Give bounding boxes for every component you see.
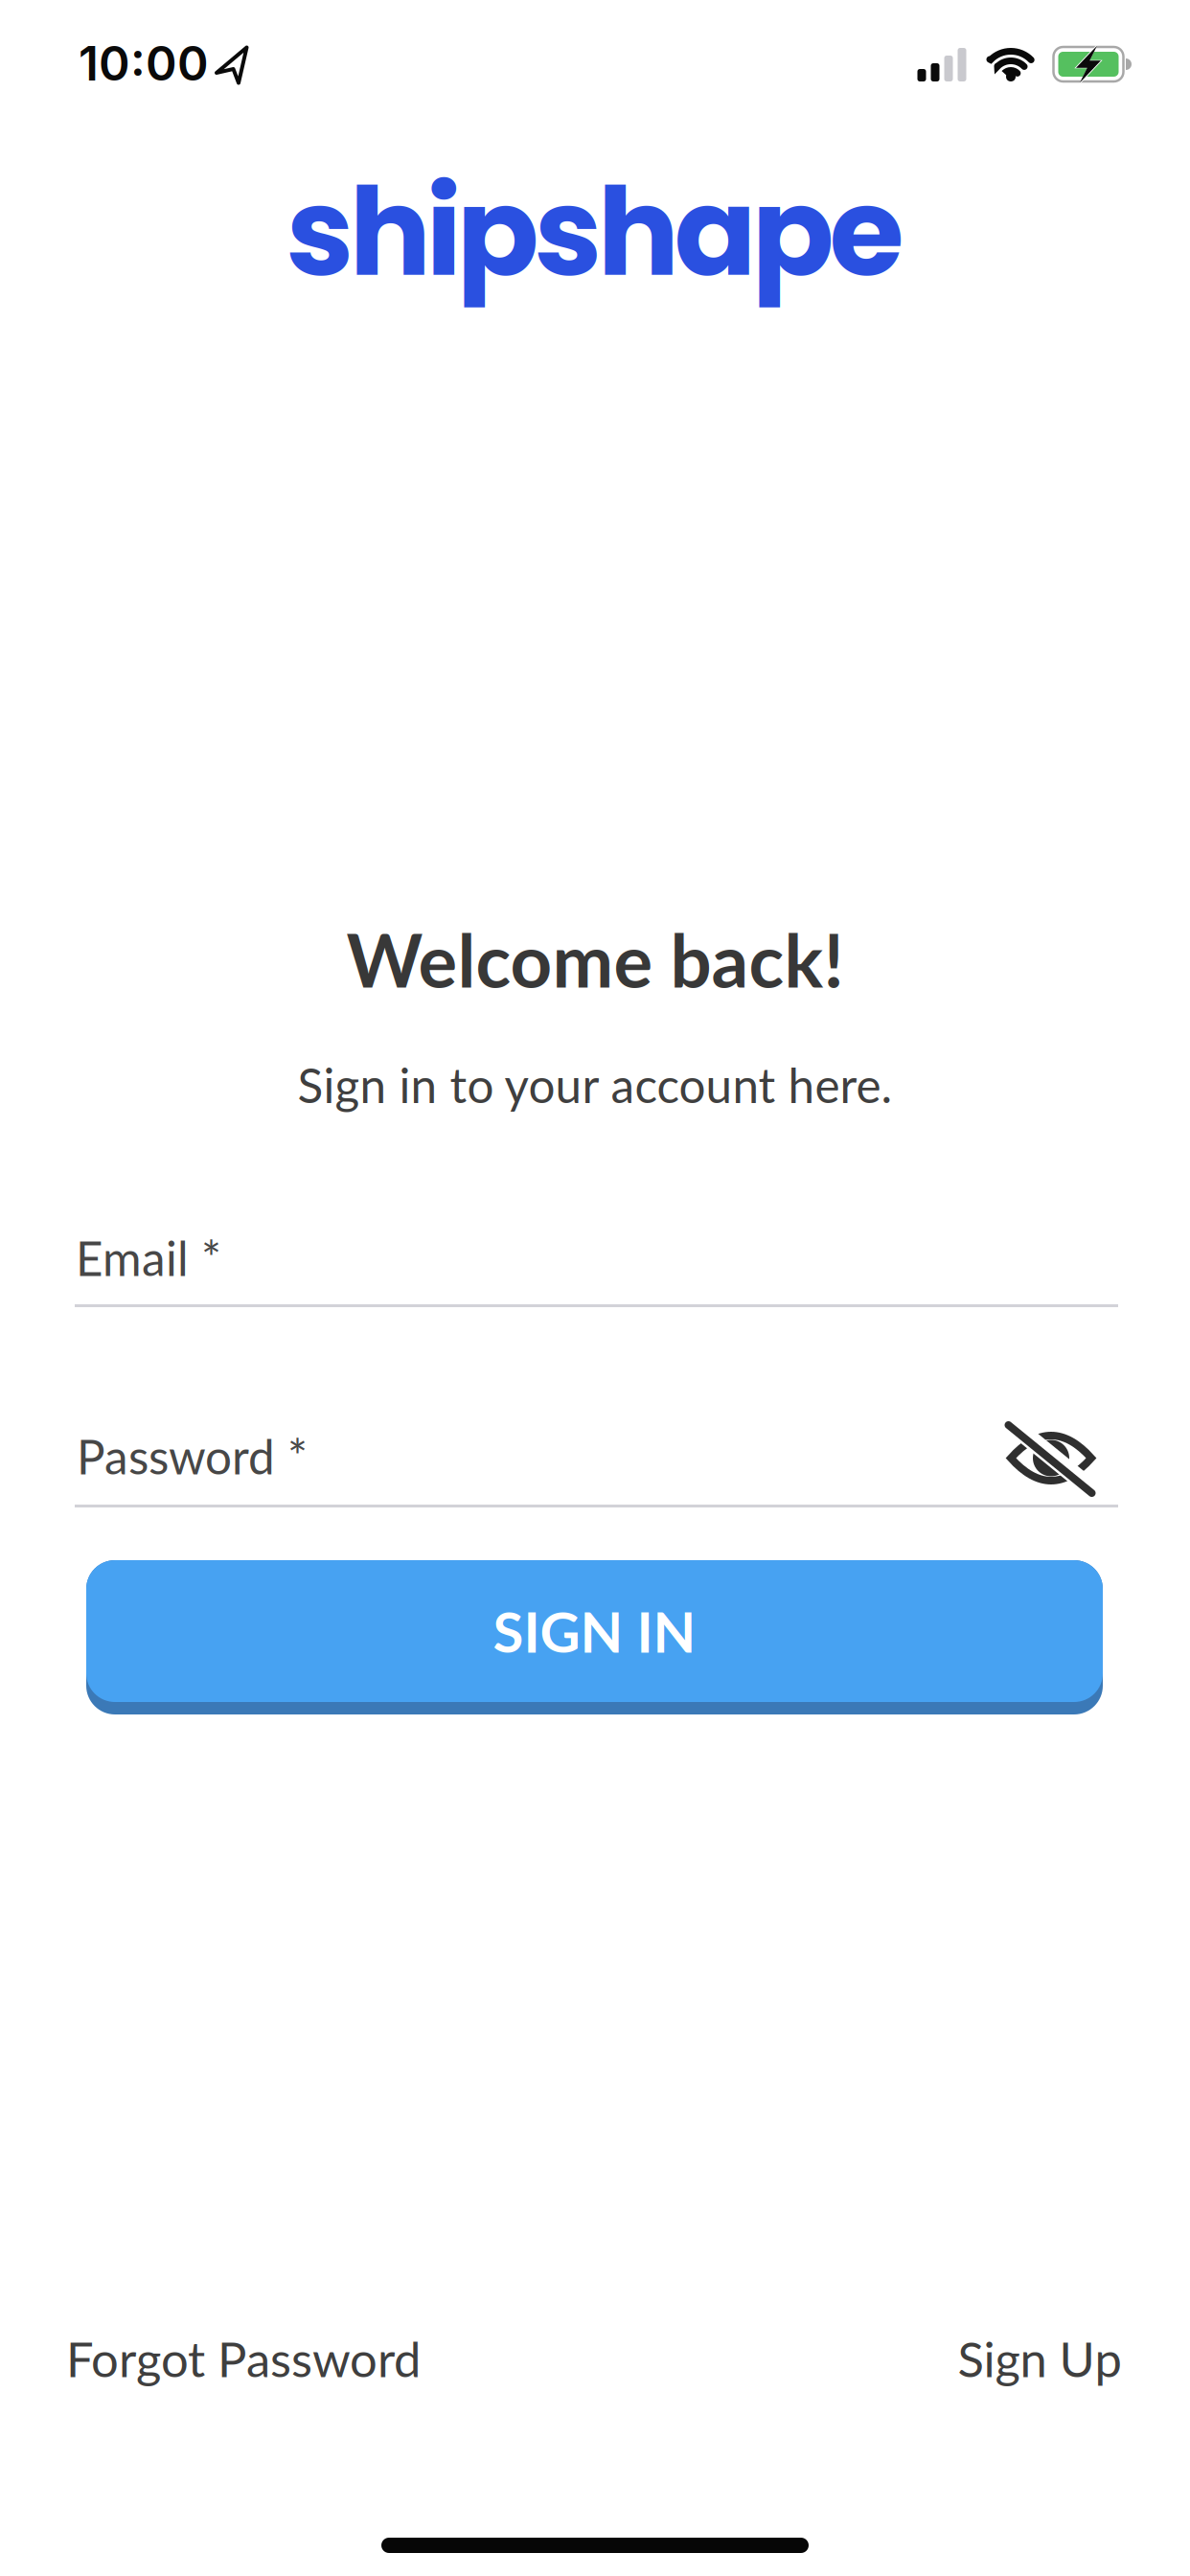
staticText: 10:00 [79,35,209,92]
staticText: Sign Up [958,2329,1121,2388]
staticText: Forgot Password [66,2329,421,2388]
staticText: Sign in to your account here. [297,1056,892,1113]
button[interactable]: SIGN IN [86,1560,1103,1714]
staticText: shipshape [286,147,904,317]
staticText: SIGN IN [493,1598,696,1664]
button[interactable]: Forgot Password [66,2329,421,2388]
staticText: Welcome back! [346,916,844,1003]
button[interactable]: Show password [1004,1418,1098,1498]
staticText: Email * [76,1229,221,1286]
staticText: Password * [77,1428,308,1485]
button[interactable]: Sign Up [958,2329,1121,2388]
